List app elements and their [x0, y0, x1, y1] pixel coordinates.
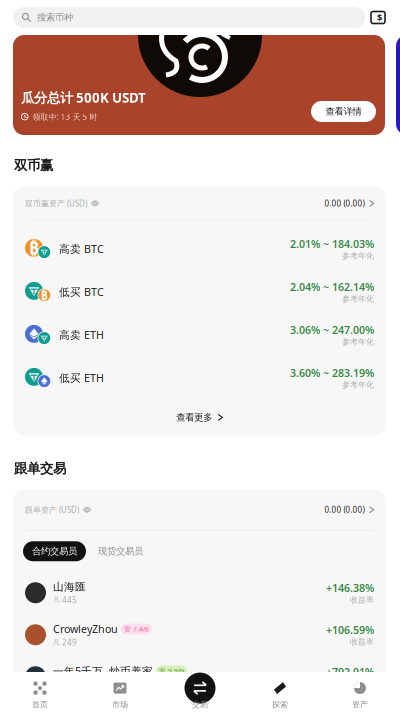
staticText: 交易 [192, 700, 208, 709]
button[interactable]: 搜索币种 [13, 7, 365, 28]
staticText: 2.01% ~ 184.03% [290, 237, 374, 251]
button[interactable]: ₿ [13, 270, 386, 313]
button[interactable]: 合约交易员 [23, 541, 86, 561]
button[interactable]: 跟单资产 (USD) [13, 490, 386, 530]
staticText: ₿ [41, 287, 48, 303]
staticText: 445 [62, 594, 77, 605]
staticText: $ [377, 11, 382, 24]
staticText: 0.00 (0.00) [325, 504, 365, 515]
staticText: 高卖 BTC [59, 242, 104, 256]
button[interactable]: CrowleyZhou [13, 614, 386, 656]
staticText: 249 [62, 637, 77, 648]
staticText: 参考年化 [342, 380, 374, 390]
staticText: CrowleyZhou [53, 622, 118, 636]
staticText: +792.91% [326, 665, 374, 679]
staticText: 首页 [32, 700, 48, 709]
staticText: 查看更多 [176, 412, 212, 423]
staticText: +146.38% [326, 581, 374, 595]
button[interactable]: ₿ [13, 227, 386, 270]
button[interactable]: 现货交易员 [92, 541, 149, 561]
button[interactable]: 首页 [0, 672, 80, 719]
staticText: 低买 ETH [59, 371, 104, 385]
button[interactable]: 探索 [240, 672, 320, 719]
staticText: +106.59% [326, 623, 374, 637]
button[interactable]: 山海匯 [13, 572, 386, 614]
staticText: 安 9.9/9 [159, 666, 184, 675]
staticText: 3.06% ~ 247.00% [290, 323, 374, 337]
staticText: 资产 [352, 700, 368, 709]
staticText: 一年5千万 炒币养家 [53, 664, 153, 678]
staticText: 领取中: 13 天 5 时 [32, 111, 97, 122]
button[interactable]: 低买 ETH [13, 356, 386, 399]
staticText: 搜索币种 [37, 12, 73, 23]
staticText: 0.00 (0.00) [325, 198, 365, 209]
button[interactable]: 资产 [320, 672, 400, 719]
staticText: 山海匯 [53, 580, 86, 593]
button[interactable]: 双币赢资产 (USD) [13, 186, 386, 220]
staticText: 瓜分总计 500K USDT [21, 89, 146, 106]
staticText: 跟单交易 [14, 460, 66, 477]
staticText: 探索 [272, 700, 288, 709]
staticText: 合约交易员 [32, 545, 77, 557]
staticText: 收益率 [350, 637, 374, 647]
staticText: 凡 [53, 596, 60, 604]
staticText: 查看详情 [325, 106, 361, 117]
staticText: ₿ [29, 236, 39, 259]
button[interactable]: 交易 [160, 672, 240, 719]
staticText: 双币赢 [14, 157, 53, 173]
staticText: 现货交易员 [98, 545, 143, 557]
button[interactable]: 查看更多 [13, 399, 386, 435]
staticText: 收益率 [350, 595, 374, 605]
button[interactable]: 瓜分总计 500K USDT [13, 35, 385, 135]
staticText: 参考年化 [342, 337, 374, 347]
staticText: 市场 [112, 700, 128, 709]
button[interactable]: 一年5千万 炒币养家 [13, 656, 386, 698]
staticText: 高卖 ETH [59, 328, 104, 342]
staticText: 双币赢资产 (USD) [25, 198, 87, 209]
button[interactable]: 市场 [80, 672, 160, 719]
staticText: 跟单资产 (USD) [25, 504, 79, 515]
staticText: 参考年化 [342, 251, 374, 261]
button[interactable]: 高卖 ETH [13, 313, 386, 356]
staticText: 3.60% ~ 283.19% [290, 366, 374, 380]
staticText: 2.04% ~ 162.14% [290, 280, 374, 294]
staticText: 安 7.4/8 [124, 624, 149, 633]
staticText: 低买 BTC [59, 285, 104, 299]
staticText: 凡 [53, 638, 60, 646]
staticText: 参考年化 [342, 294, 374, 304]
staticText: 收益率 [350, 679, 374, 689]
button[interactable]: 资产账本 [369, 9, 387, 25]
